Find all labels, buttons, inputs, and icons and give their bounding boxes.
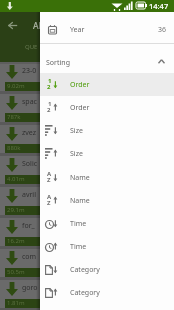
staticText: 1.81m (7, 299, 25, 307)
button[interactable] (0, 218, 42, 246)
staticText: spac (22, 97, 37, 107)
staticText: goro (22, 283, 38, 293)
staticText: com (22, 252, 37, 262)
staticText: 23-0 (22, 66, 37, 76)
staticText: 880k (7, 144, 21, 152)
staticText: Category (70, 265, 100, 275)
staticText: 2 (47, 83, 51, 91)
staticText: A (47, 170, 52, 178)
staticText: QUE (25, 43, 38, 51)
staticText: Solic (22, 159, 38, 169)
staticText: 4.01m (7, 175, 25, 183)
button[interactable]: Year (40, 12, 174, 43)
staticText: 16.2m (7, 237, 25, 245)
button[interactable]: 1 (40, 73, 174, 96)
staticText: Size (70, 149, 83, 159)
button[interactable]: A (40, 189, 174, 212)
button[interactable]: Category (40, 281, 174, 304)
staticText: 1 (48, 100, 52, 108)
staticText: Category (70, 288, 100, 298)
staticText: A (47, 193, 52, 201)
button[interactable] (0, 94, 42, 122)
staticText: ADM (33, 20, 53, 32)
staticText: 1 (48, 77, 52, 85)
button[interactable] (0, 63, 42, 91)
staticText: Name (70, 173, 90, 183)
staticText: Sorting (46, 58, 70, 68)
button[interactable]: Category (40, 258, 174, 281)
staticText: avril (22, 190, 36, 200)
staticText: 9.02m (7, 82, 25, 90)
button[interactable] (8, 22, 18, 29)
staticText: Order (70, 103, 90, 113)
staticText: 2 (47, 106, 51, 114)
button[interactable]: Time (40, 212, 174, 235)
staticText: Name (70, 196, 90, 206)
button[interactable]: Time (40, 235, 174, 258)
staticText: Time (70, 219, 87, 229)
button[interactable]: A (40, 166, 174, 189)
button[interactable]: 1 (40, 96, 174, 119)
staticText: Size (70, 126, 83, 136)
staticText: 50.5m (7, 268, 25, 276)
staticText: Z (47, 199, 51, 207)
staticText: 14:47 (149, 1, 169, 11)
button[interactable]: Size (40, 119, 174, 142)
button[interactable] (0, 125, 42, 153)
staticText: 36 (158, 25, 167, 35)
staticText: Time (70, 242, 87, 252)
button[interactable]: Size (40, 142, 174, 165)
staticText: for_ (22, 221, 35, 231)
button[interactable] (0, 249, 42, 277)
staticText: Order (70, 80, 90, 90)
button[interactable] (0, 280, 42, 308)
button[interactable] (0, 156, 42, 184)
staticText: Z (47, 176, 51, 184)
staticText: 787k (7, 113, 21, 121)
staticText: 29.1m (7, 206, 25, 214)
button[interactable] (0, 187, 42, 215)
staticText: zvez (22, 128, 37, 138)
button[interactable]: Sorting (40, 44, 174, 73)
staticText: Year (70, 25, 85, 35)
